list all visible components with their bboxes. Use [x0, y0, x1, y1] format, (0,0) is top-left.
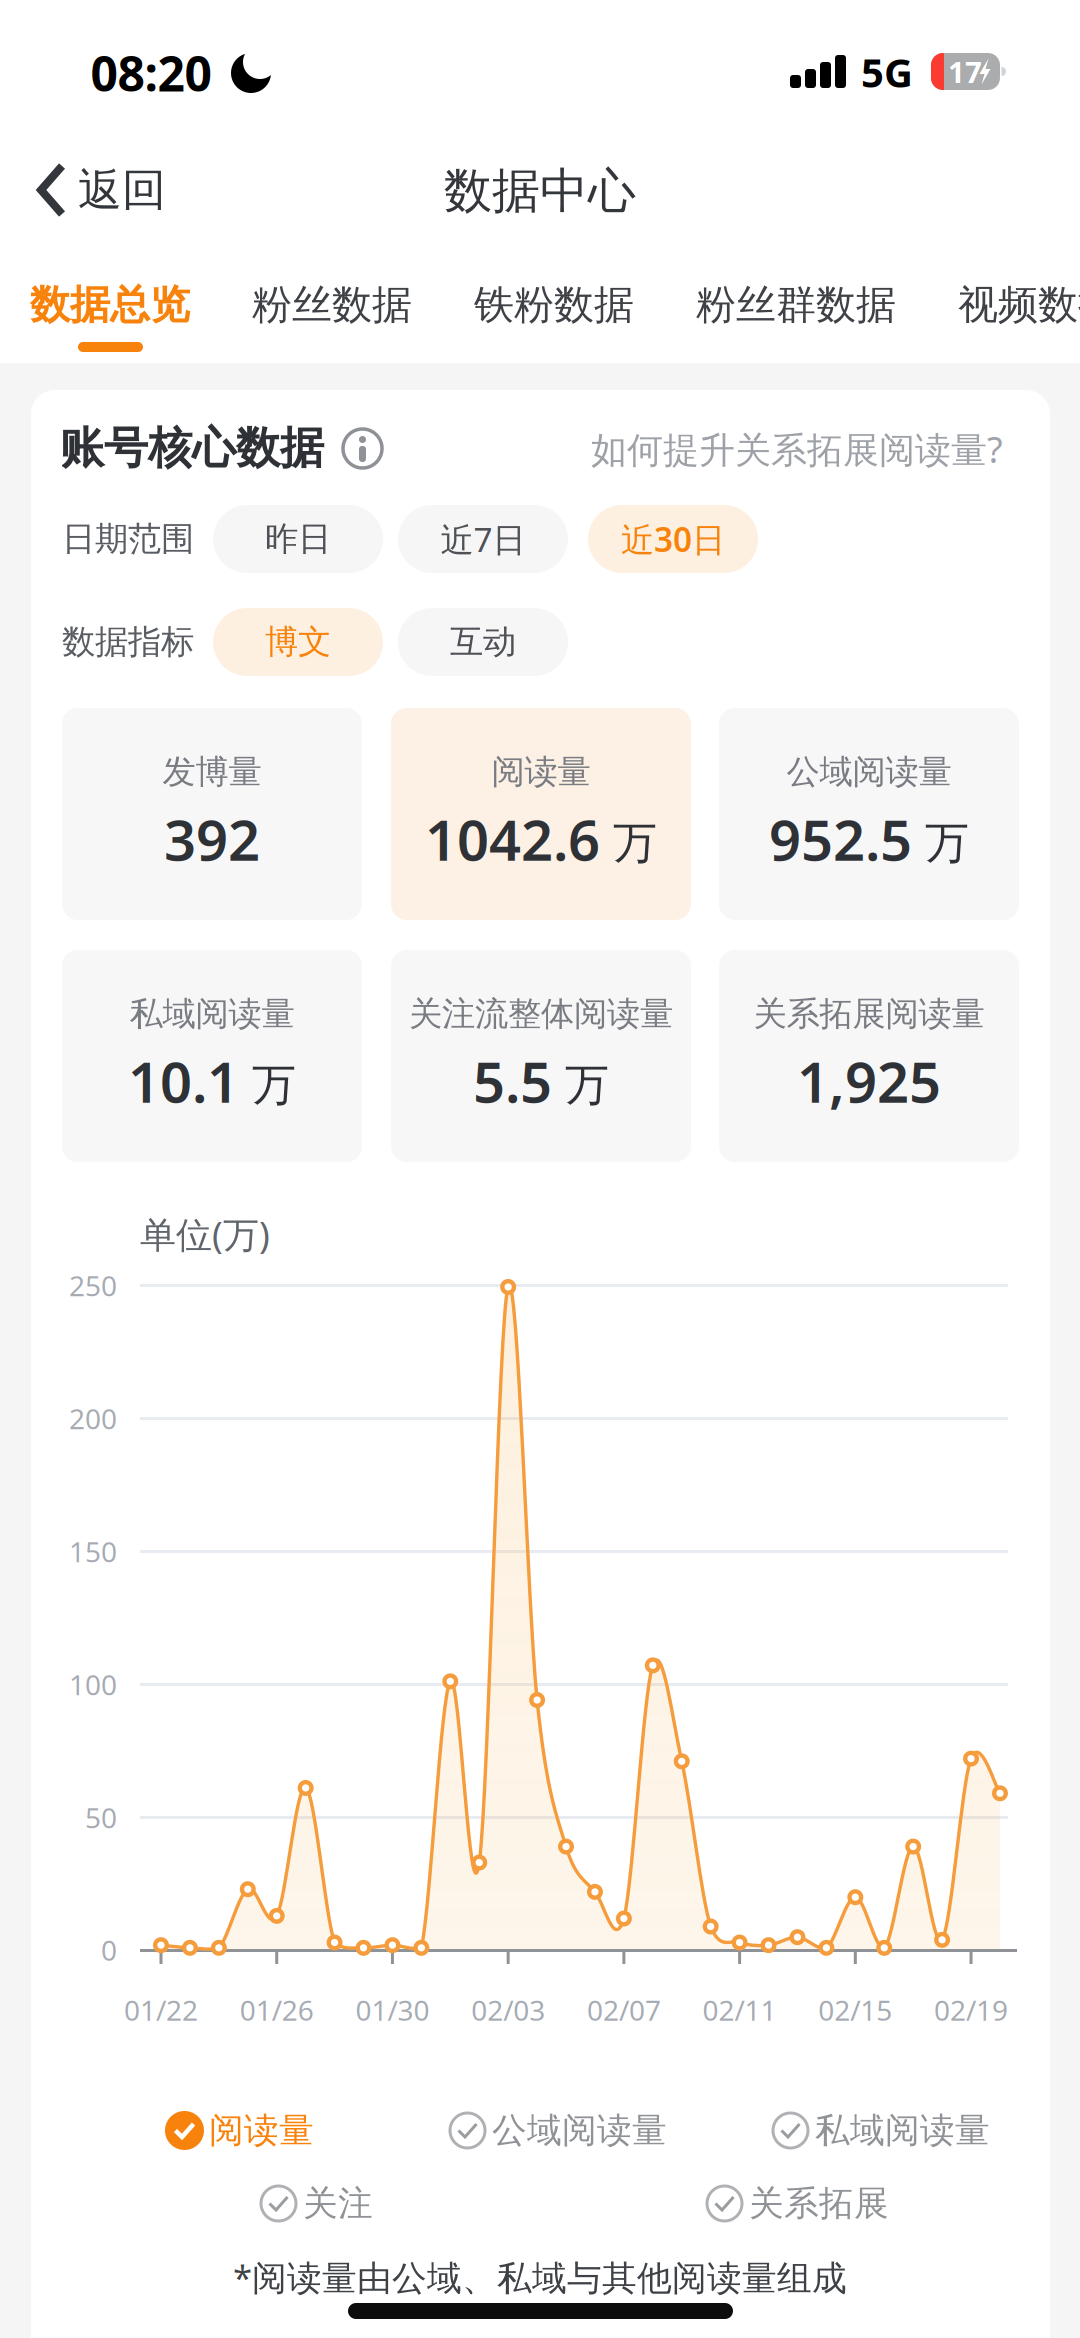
button[interactable]: 粉丝群数据	[696, 280, 896, 329]
staticText: 粉丝群数据	[696, 280, 896, 329]
staticText: 01/30	[355, 1991, 429, 2029]
button[interactable]: 近30日	[588, 505, 758, 573]
staticText: 0	[101, 1931, 117, 1969]
staticText: 万	[925, 816, 969, 870]
staticText: 铁粉数据	[474, 280, 634, 329]
staticText: 02/07	[587, 1991, 661, 2029]
staticText: 150	[69, 1533, 117, 1570]
staticText: 公域阅读量	[786, 751, 951, 792]
staticText: 返回	[78, 163, 166, 217]
button[interactable]: 粉丝数据	[252, 280, 412, 329]
staticText: 01/22	[124, 1991, 198, 2029]
staticText: 近30日	[621, 517, 725, 561]
button[interactable]: 关系拓展	[705, 2182, 889, 2225]
staticText: 关系拓展阅读量	[753, 993, 984, 1034]
button[interactable]: 近7日	[398, 505, 568, 573]
staticText: 5G	[861, 45, 913, 98]
staticText: 发博量	[162, 751, 261, 792]
staticText: 日期范围	[62, 518, 194, 559]
button[interactable]: 关注	[259, 2182, 373, 2225]
staticText: 单位(万)	[140, 1210, 270, 1258]
staticText: 02/11	[703, 1991, 777, 2029]
staticText: 阅读量	[491, 751, 590, 792]
button[interactable]: 阅读量	[391, 708, 691, 920]
button[interactable]: 互动	[398, 608, 568, 676]
staticText: 粉丝数据	[252, 280, 412, 329]
staticText: 01/26	[240, 1991, 314, 2029]
staticText: 昨日	[265, 518, 331, 559]
button[interactable]: 视频数据	[958, 280, 1080, 329]
staticText: 100	[69, 1666, 117, 1703]
button[interactable]: 公域阅读量	[448, 2109, 667, 2152]
staticText: 关注流整体阅读量	[409, 993, 673, 1034]
staticText: 关注	[303, 2182, 373, 2225]
button[interactable]: 返回	[36, 162, 166, 218]
button[interactable]: 铁粉数据	[474, 280, 634, 329]
button[interactable]: 关注流整体阅读量	[391, 950, 691, 1162]
staticText: 5.5	[473, 1044, 552, 1118]
staticText: 如何提升关系拓展阅读量?	[591, 425, 1003, 473]
staticText: 50	[85, 1799, 117, 1836]
staticText: 互动	[450, 621, 516, 662]
staticText: 公域阅读量	[492, 2109, 667, 2152]
staticText: 952.5	[769, 802, 912, 876]
staticText: 02/03	[471, 1991, 545, 2029]
staticText: 万	[252, 1058, 296, 1112]
staticText: 02/19	[934, 1991, 1008, 2029]
staticText: 账号核心数据	[60, 421, 324, 475]
button[interactable]: 数据总览	[30, 280, 190, 329]
button[interactable]: 关系拓展阅读量	[719, 950, 1019, 1162]
staticText: 数据中心	[444, 161, 636, 220]
staticText: 08:20	[90, 41, 211, 105]
button[interactable]: 发博量	[62, 708, 362, 920]
button[interactable]: 私域阅读量	[771, 2109, 990, 2152]
staticText: 250	[69, 1267, 117, 1304]
staticText: 200	[69, 1400, 117, 1437]
staticText: 数据指标	[62, 621, 194, 662]
button[interactable]: 公域阅读量	[719, 708, 1019, 920]
staticText: 1,925	[797, 1044, 941, 1118]
button[interactable]: 博文	[213, 608, 383, 676]
staticText: 392	[164, 802, 260, 876]
staticText: 博文	[265, 621, 331, 662]
staticText: 关系拓展	[749, 2182, 889, 2225]
staticText: *阅读量由公域、私域与其他阅读量组成	[233, 2254, 847, 2300]
button[interactable]: 私域阅读量	[62, 950, 362, 1162]
staticText: 17	[948, 52, 982, 91]
staticText: 1042.6	[425, 802, 600, 876]
staticText: 视频数据	[958, 280, 1080, 329]
staticText: 10.1	[128, 1044, 239, 1118]
button[interactable]: 如何提升关系拓展阅读量?	[591, 425, 1003, 473]
button[interactable]: 说明	[341, 427, 384, 470]
staticText: 私域阅读量	[129, 993, 294, 1034]
staticText: 近7日	[440, 517, 525, 561]
staticText: 02/15	[818, 1991, 892, 2029]
staticText: 万	[613, 816, 657, 870]
button[interactable]: 阅读量	[165, 2109, 314, 2152]
staticText: 阅读量	[209, 2109, 314, 2152]
staticText: 私域阅读量	[815, 2109, 990, 2152]
staticText: 万	[565, 1058, 609, 1112]
button[interactable]: 昨日	[213, 505, 383, 573]
staticText: 数据总览	[30, 280, 190, 329]
